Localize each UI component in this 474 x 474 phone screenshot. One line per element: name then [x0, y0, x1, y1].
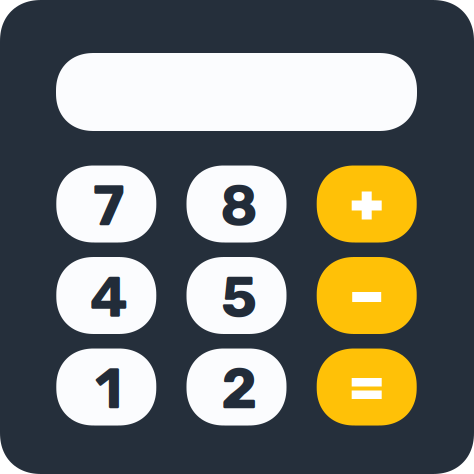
button[interactable]: 1 [56, 348, 156, 425]
button[interactable]: Display [56, 53, 417, 131]
button[interactable]: Add [317, 165, 417, 242]
button[interactable]: 7 [56, 165, 156, 242]
staticText: 1 [95, 356, 123, 422]
staticText: 2 [221, 356, 257, 422]
button[interactable]: 4 [56, 257, 156, 334]
staticText: 4 [90, 264, 128, 331]
staticText: 7 [93, 173, 125, 239]
button[interactable]: 5 [186, 257, 286, 334]
staticText: 5 [221, 264, 257, 331]
button[interactable]: 2 [186, 348, 286, 425]
button[interactable]: Subtract [317, 257, 417, 334]
button[interactable]: Equals [317, 348, 417, 425]
staticText: 8 [220, 173, 258, 239]
button[interactable]: 8 [186, 165, 286, 242]
